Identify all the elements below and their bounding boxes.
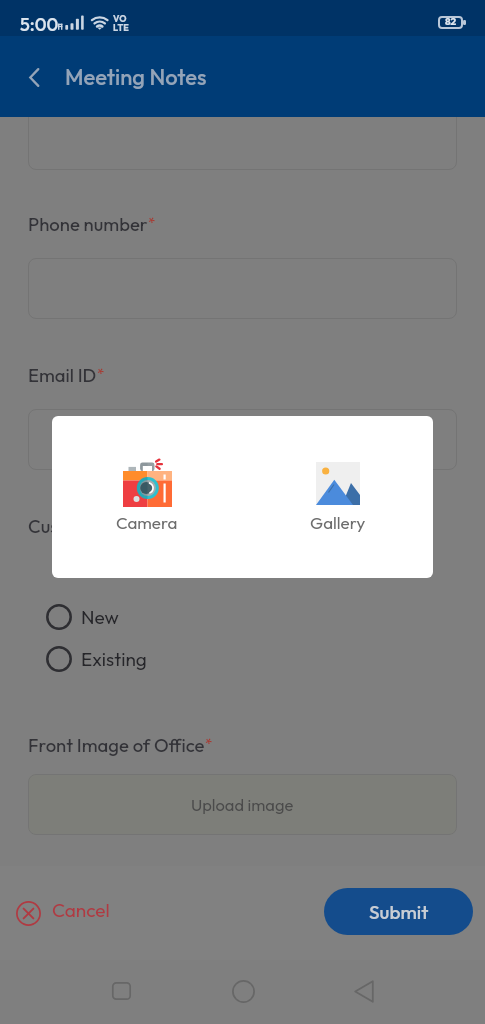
button[interactable]: Submit [324, 888, 473, 935]
staticText: Front Image of Office [28, 733, 205, 756]
button[interactable]: Existing [46, 646, 147, 672]
staticText: Customer type [28, 514, 150, 537]
button[interactable]: Cancel [16, 892, 110, 934]
button[interactable]: Camera [52, 416, 242, 578]
staticText: Gallery [310, 512, 366, 533]
staticText: Existing [81, 647, 147, 671]
button[interactable]: Upload image [28, 774, 457, 835]
button[interactable]: Gallery [242, 416, 433, 578]
button[interactable] [28, 409, 457, 470]
staticText: VO [113, 13, 127, 24]
staticText: Upload image [191, 794, 294, 815]
staticText: Camera [116, 512, 178, 533]
button[interactable]: New [46, 604, 119, 630]
staticText: * [205, 734, 213, 753]
staticText: LTE [113, 22, 129, 33]
staticText: Cancel [52, 898, 110, 922]
staticText: * [97, 364, 105, 383]
button[interactable]: Recent apps [97, 967, 145, 1015]
staticText: 82 [445, 15, 457, 28]
staticText: * [148, 213, 156, 232]
staticText: Meeting Notes [65, 63, 207, 91]
staticText: New [81, 605, 119, 629]
staticText: Phone number [28, 212, 148, 235]
staticText: 5:00 [20, 13, 59, 36]
button[interactable]: Back [340, 967, 388, 1015]
button[interactable]: Back [17, 60, 51, 94]
staticText: Email ID [28, 363, 97, 386]
staticText: * [150, 515, 158, 534]
staticText: Submit [369, 900, 429, 924]
button[interactable]: Home [219, 967, 267, 1015]
